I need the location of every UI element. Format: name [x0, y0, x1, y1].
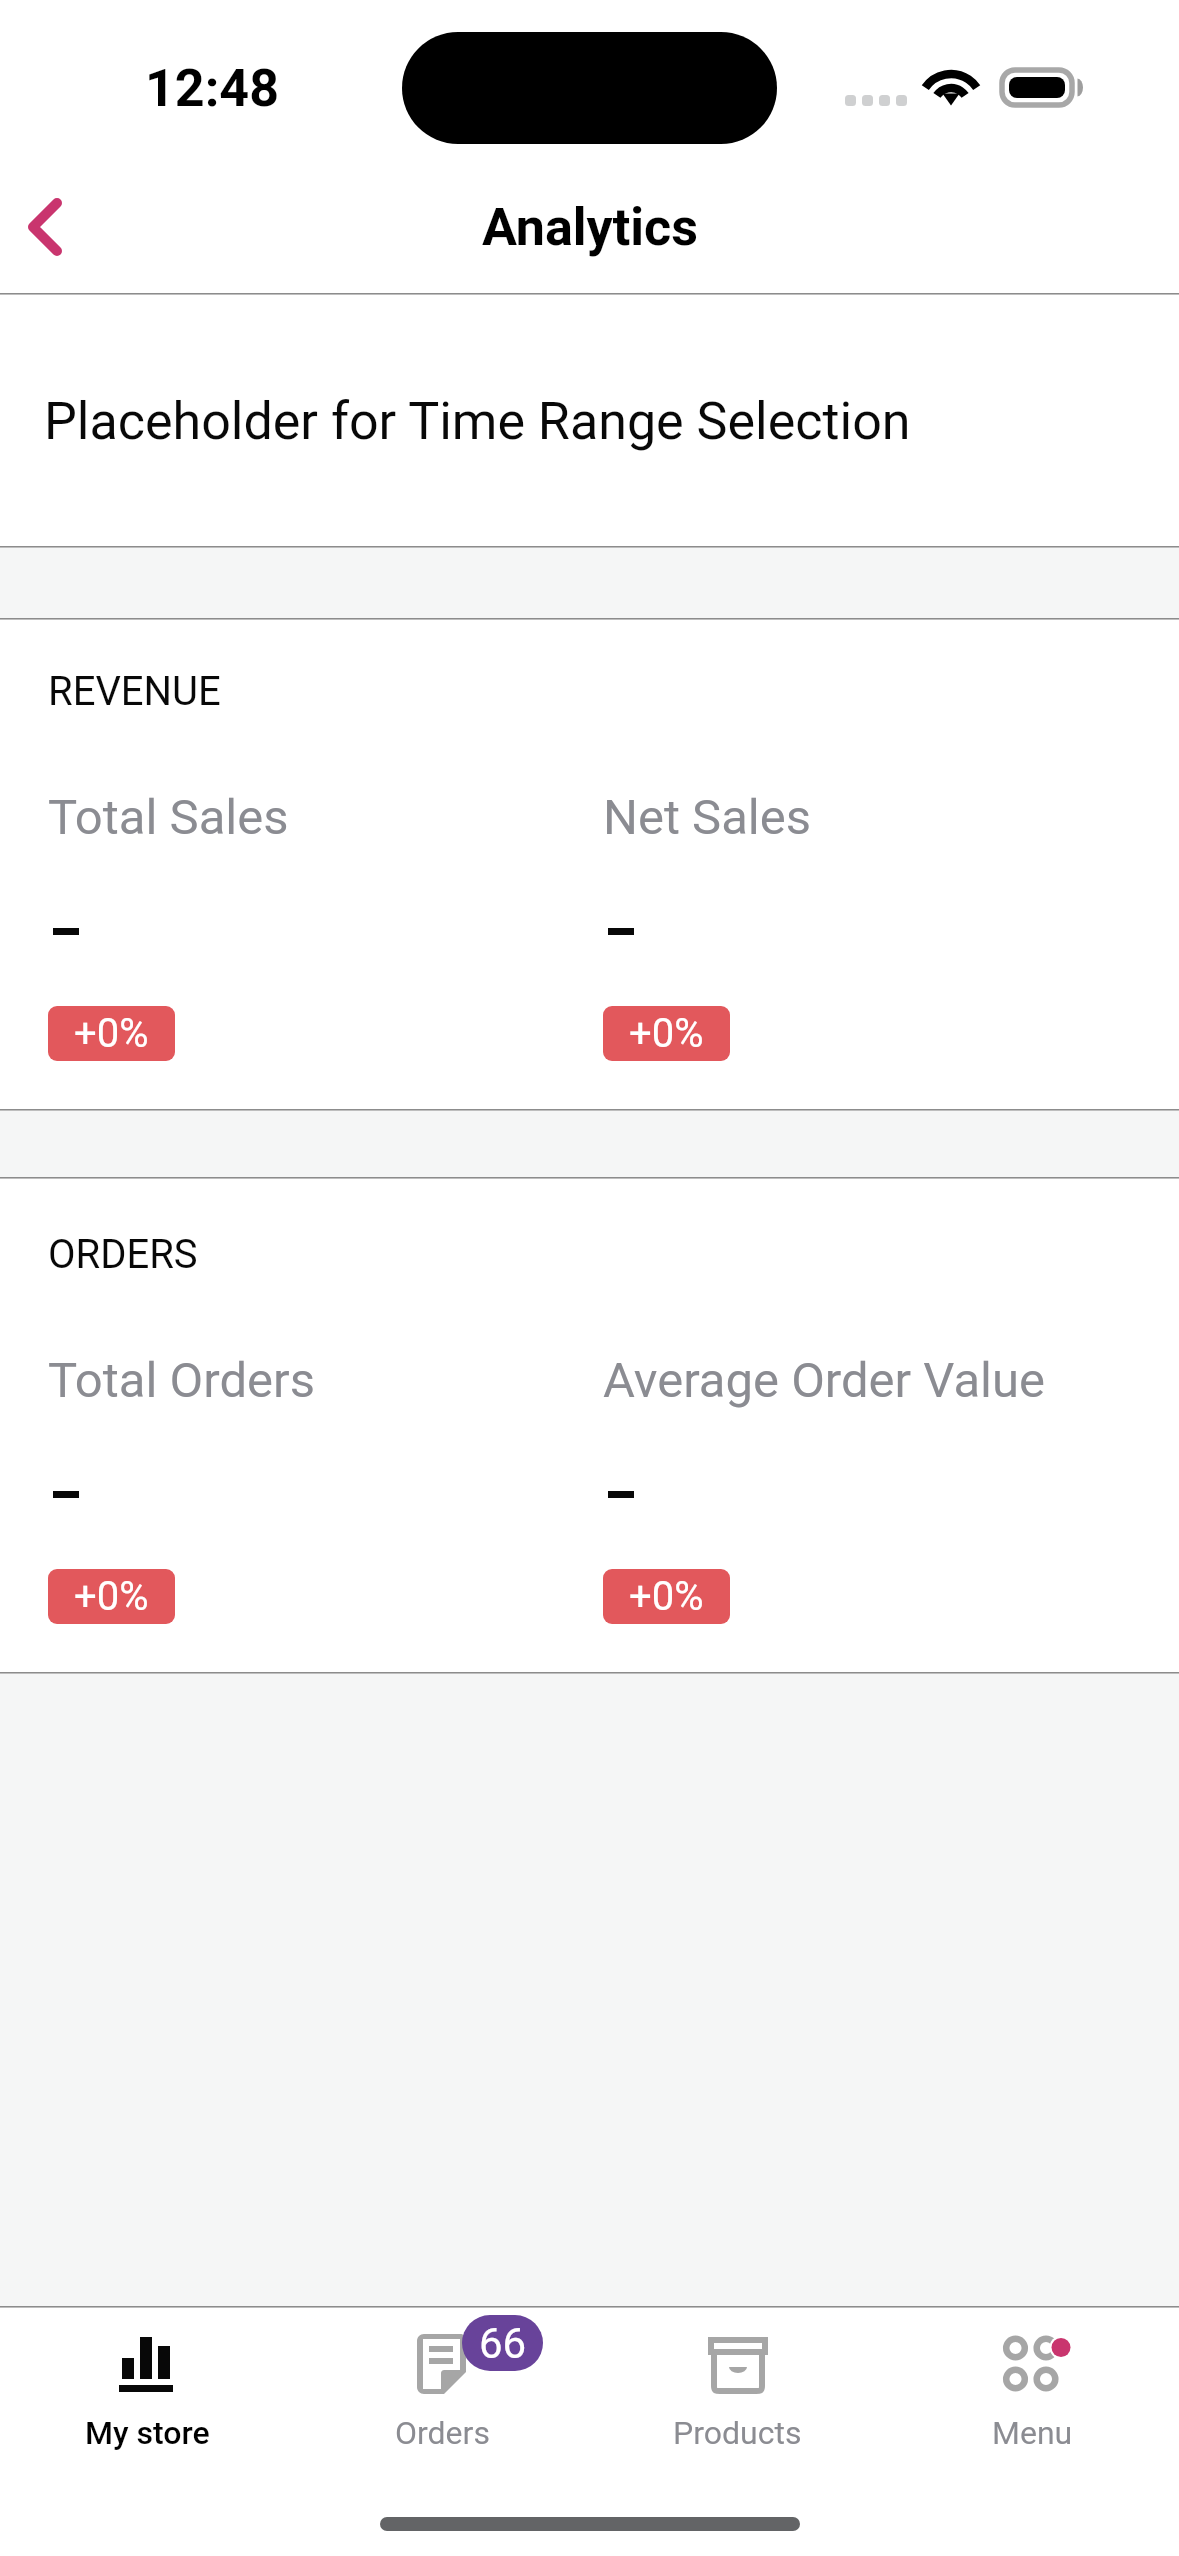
- button[interactable]: +0%: [48, 1569, 175, 1624]
- staticText: Average Order Value: [603, 1352, 1046, 1409]
- staticText: +0%: [629, 1573, 704, 1620]
- button[interactable]: Average Order Value: [603, 1352, 1073, 1624]
- staticText: Placeholder for Time Range Selection: [44, 391, 911, 452]
- button[interactable]: My store: [0, 2308, 295, 2478]
- staticText: Analytics: [482, 197, 698, 258]
- button[interactable]: +0%: [603, 1569, 730, 1624]
- button[interactable]: +0%: [48, 1006, 175, 1061]
- button[interactable]: Net Sales: [603, 789, 1073, 1061]
- button[interactable]: Placeholder for Time Range Selection: [0, 295, 1179, 546]
- staticText: Total Sales: [48, 789, 289, 846]
- staticText: My store: [85, 2414, 210, 2452]
- button[interactable]: Menu: [885, 2308, 1179, 2478]
- staticText: ORDERS: [48, 1231, 198, 1278]
- staticText: Menu: [992, 2414, 1073, 2452]
- staticText: Orders: [395, 2414, 490, 2452]
- staticText: Total Orders: [48, 1352, 315, 1409]
- staticText: +0%: [74, 1010, 149, 1057]
- staticText: 12:48: [145, 58, 280, 119]
- staticText: 66: [479, 2319, 527, 2368]
- staticText: +0%: [74, 1573, 149, 1620]
- staticText: Products: [673, 2414, 802, 2452]
- button[interactable]: +0%: [603, 1006, 730, 1061]
- button[interactable]: Products: [590, 2308, 885, 2478]
- staticText: +0%: [629, 1010, 704, 1057]
- button[interactable]: Back: [0, 171, 110, 281]
- staticText: Net Sales: [603, 789, 812, 846]
- button[interactable]: 66: [295, 2308, 590, 2478]
- staticText: REVENUE: [48, 668, 221, 715]
- button[interactable]: Total Sales: [48, 789, 518, 1061]
- button[interactable]: Total Orders: [48, 1352, 518, 1624]
